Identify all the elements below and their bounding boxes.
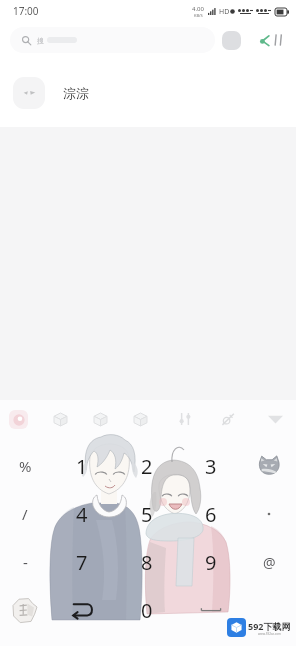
button[interactable]: 9 — [180, 538, 242, 586]
other: Space — [196, 604, 226, 616]
staticText: - — [23, 552, 28, 572]
button[interactable]: Space — [180, 586, 242, 634]
staticText: 淙淙 — [63, 85, 89, 101]
other: Enter — [69, 601, 95, 619]
button[interactable]: Enter — [50, 586, 113, 634]
button[interactable]: Emoji — [51, 410, 69, 428]
button[interactable]: Hide keyboard — [265, 409, 285, 429]
button[interactable]: - — [0, 538, 50, 586]
button[interactable] — [242, 586, 296, 634]
staticText: 1 — [76, 453, 88, 480]
button[interactable]: Profile — [222, 31, 241, 50]
staticText: 4 — [76, 501, 88, 528]
button[interactable]: 6 — [180, 490, 242, 538]
button[interactable]: 0 — [113, 586, 180, 634]
staticText: 9 — [205, 549, 217, 576]
button[interactable]: Settings — [176, 410, 194, 428]
staticText: 7 — [76, 549, 88, 576]
staticText: 592下载网 — [248, 620, 291, 632]
staticText: 2 — [141, 453, 153, 480]
staticText: 17:00 — [13, 4, 39, 18]
button[interactable]: 2 — [113, 442, 180, 490]
button[interactable]: 7 — [50, 538, 113, 586]
staticText: www.592xz.com — [258, 632, 281, 636]
other: Switch language — [10, 595, 40, 625]
staticText: 4.00 — [192, 5, 204, 13]
button[interactable]: 搜 — [10, 27, 215, 53]
staticText: KB/S — [194, 13, 203, 18]
staticText: % — [19, 456, 32, 476]
button[interactable]: % — [0, 442, 50, 490]
button[interactable]: Voice — [91, 410, 109, 428]
staticText: / — [22, 504, 28, 524]
button[interactable]: @ — [242, 538, 296, 586]
button[interactable]: / — [0, 490, 50, 538]
button[interactable]: 淙淙 — [0, 58, 296, 127]
button[interactable]: Backspace — [242, 442, 296, 490]
button[interactable]: Handwriting — [219, 410, 237, 428]
staticText: 搜 — [37, 36, 44, 45]
button[interactable]: 3 — [180, 442, 242, 490]
staticText: 3 — [205, 453, 217, 480]
staticText: 5 — [141, 501, 153, 528]
other: Backspace — [256, 453, 282, 479]
button[interactable]: 1 — [50, 442, 113, 490]
button[interactable]: Clipboard — [131, 410, 149, 428]
button[interactable]: 8 — [113, 538, 180, 586]
staticText: @ — [263, 553, 276, 572]
button[interactable] — [242, 490, 296, 538]
button[interactable]: Scan — [259, 33, 285, 47]
staticText: 8 — [141, 549, 153, 576]
staticText: 6 — [205, 501, 217, 528]
button[interactable]: Input method — [9, 410, 28, 429]
button[interactable]: 5 — [113, 490, 180, 538]
staticText: 0 — [141, 597, 153, 624]
staticText: HD — [219, 7, 230, 17]
button[interactable]: 4 — [50, 490, 113, 538]
button[interactable]: Switch language — [0, 586, 50, 634]
